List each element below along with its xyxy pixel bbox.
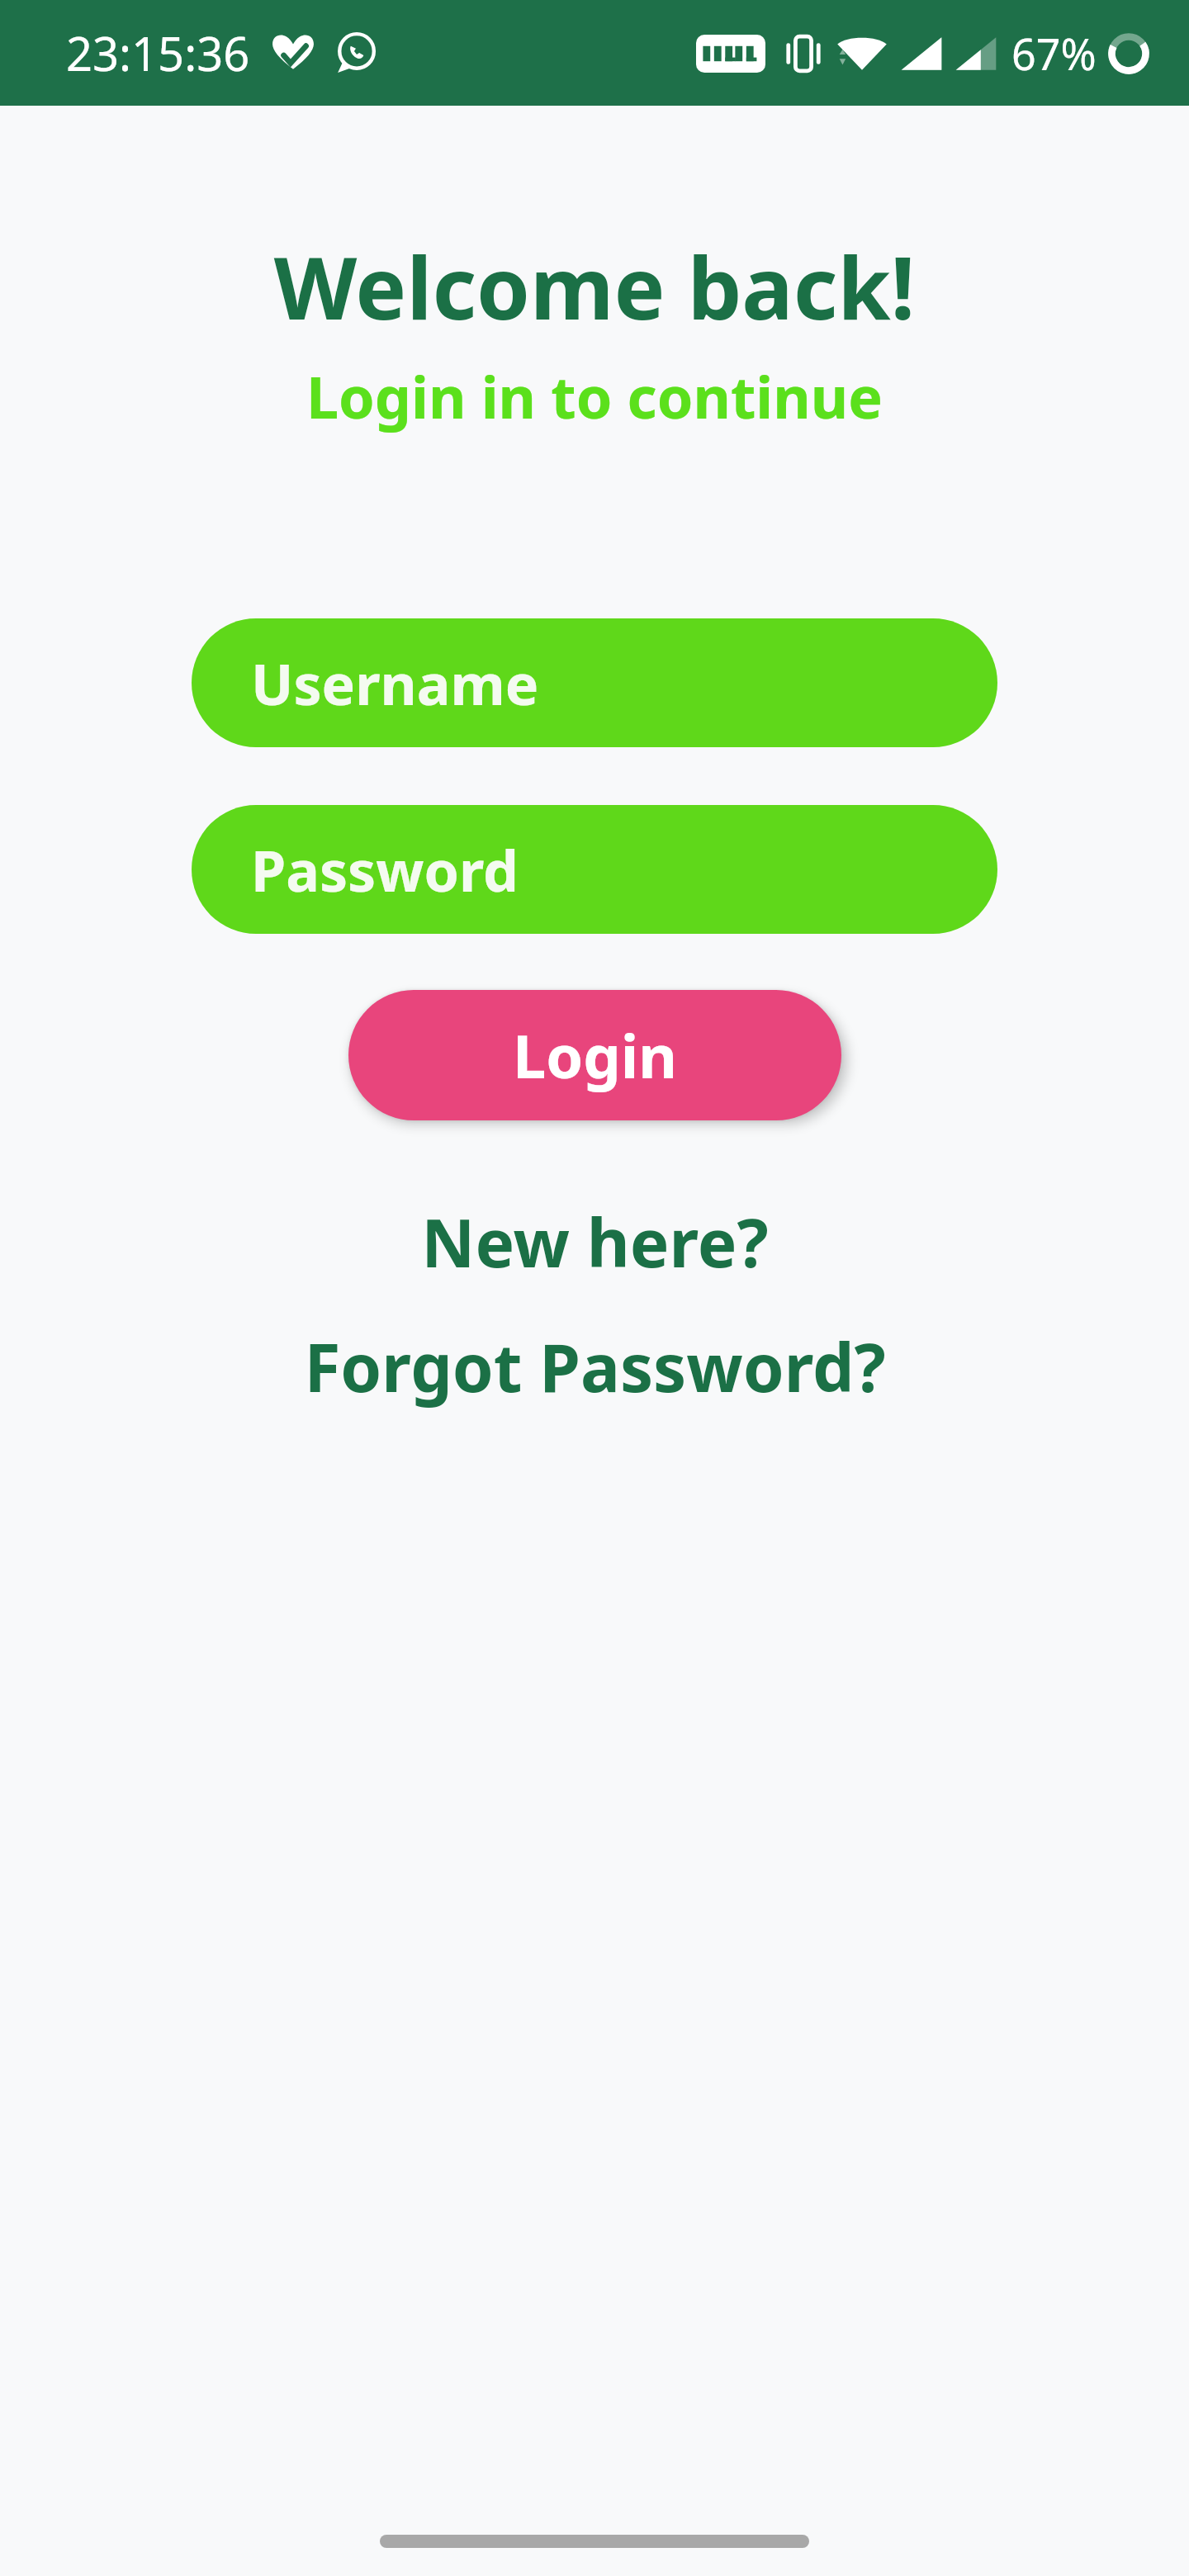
button[interactable]: New here? — [388, 1188, 802, 1295]
button[interactable]: Username — [192, 618, 997, 747]
button[interactable]: Forgot Password? — [271, 1313, 919, 1419]
staticText: New here? — [421, 1196, 769, 1286]
button[interactable]: Login — [348, 990, 841, 1120]
staticText: Password — [251, 831, 519, 908]
staticText: 67% — [1011, 24, 1097, 83]
staticText: Forgot Password? — [304, 1321, 886, 1411]
staticText: 23:15:36 — [66, 21, 250, 84]
staticText: Login in to continue — [0, 357, 1189, 435]
staticText: Welcome back! — [0, 228, 1189, 345]
button[interactable]: Password — [192, 805, 997, 934]
staticText: Login — [513, 1015, 678, 1096]
staticText: Username — [251, 645, 539, 722]
